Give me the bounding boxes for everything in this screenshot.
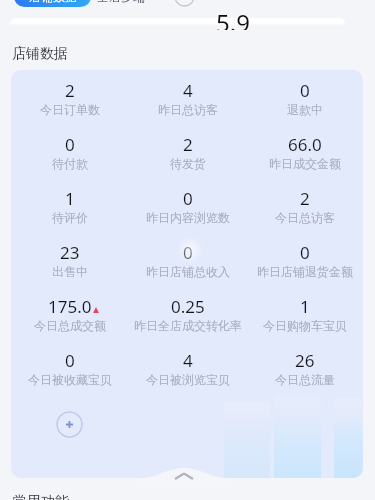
staticText: 今日被浏览宝贝: [146, 372, 230, 387]
staticText: 待评价: [52, 210, 88, 225]
button[interactable]: 66.0: [246, 133, 363, 171]
button[interactable]: 4: [129, 349, 246, 387]
staticText: 23: [60, 241, 80, 264]
staticText: 5.9: [216, 6, 250, 30]
button[interactable]: 0: [129, 241, 246, 279]
staticText: 0: [183, 187, 193, 210]
staticText: 0: [300, 79, 310, 102]
staticText: 昨日内容浏览数: [146, 210, 230, 225]
staticText: 1: [300, 295, 310, 318]
staticText: 2: [65, 79, 75, 102]
staticText: 今日购物车宝贝: [263, 318, 347, 333]
button[interactable]: 175.0: [11, 295, 129, 333]
staticText: 昨日店铺退货金额: [257, 264, 353, 279]
button[interactable]: 0: [246, 241, 363, 279]
button[interactable]: 4: [129, 79, 246, 117]
button[interactable]: 0: [246, 79, 363, 117]
staticText: 店铺数据: [29, 0, 77, 4]
staticText: 店铺数据: [12, 45, 68, 63]
button[interactable]: More: [174, 0, 195, 7]
staticText: 待付款: [52, 156, 88, 171]
button[interactable]: 2: [246, 187, 363, 225]
button[interactable]: 1: [11, 187, 129, 225]
staticText: 今日总成交额: [34, 318, 106, 333]
staticText: 昨日店铺总收入: [146, 264, 230, 279]
staticText: 退款中: [287, 102, 323, 117]
staticText: 出售中: [52, 264, 88, 279]
staticText: 4: [183, 79, 193, 102]
staticText: 今日订单数: [40, 102, 100, 117]
staticText: 0: [65, 349, 75, 372]
staticText: 0: [300, 241, 310, 264]
staticText: 昨日总访客: [158, 102, 218, 117]
staticText: 常用功能: [13, 493, 69, 500]
staticText: 26: [295, 349, 315, 372]
button[interactable]: 0: [11, 349, 129, 387]
button[interactable]: 26: [246, 349, 363, 387]
button[interactable]: 0: [129, 187, 246, 225]
staticText: 昨日成交金额: [269, 156, 341, 171]
button[interactable]: 23: [11, 241, 129, 279]
staticText: 今日被收藏宝贝: [28, 372, 112, 387]
button[interactable]: 2: [11, 79, 129, 117]
staticText: 0: [183, 241, 193, 264]
staticText: 66.0: [288, 133, 322, 156]
staticText: 0: [65, 133, 75, 156]
staticText: 1: [65, 187, 75, 210]
staticText: 2: [300, 187, 310, 210]
staticText: 待发货: [170, 156, 206, 171]
button[interactable]: Collapse: [138, 464, 230, 486]
button[interactable]: 0: [11, 133, 129, 171]
staticText: 4: [183, 349, 193, 372]
staticText: 今日总流量: [275, 372, 335, 387]
button[interactable]: 全店多端: [96, 0, 146, 7]
staticText: 今日总访客: [275, 210, 335, 225]
staticText: 全店多端: [97, 0, 145, 4]
staticText: 175.0: [48, 295, 92, 318]
button[interactable]: 店铺数据: [14, 0, 91, 7]
button[interactable]: 1: [246, 295, 363, 333]
button[interactable]: 2: [129, 133, 246, 171]
staticText: 0.25: [171, 295, 205, 318]
staticText: 2: [183, 133, 193, 156]
staticText: 昨日全店成交转化率: [134, 318, 242, 333]
button[interactable]: 0.25: [129, 295, 246, 333]
button[interactable]: Add: [56, 411, 83, 438]
